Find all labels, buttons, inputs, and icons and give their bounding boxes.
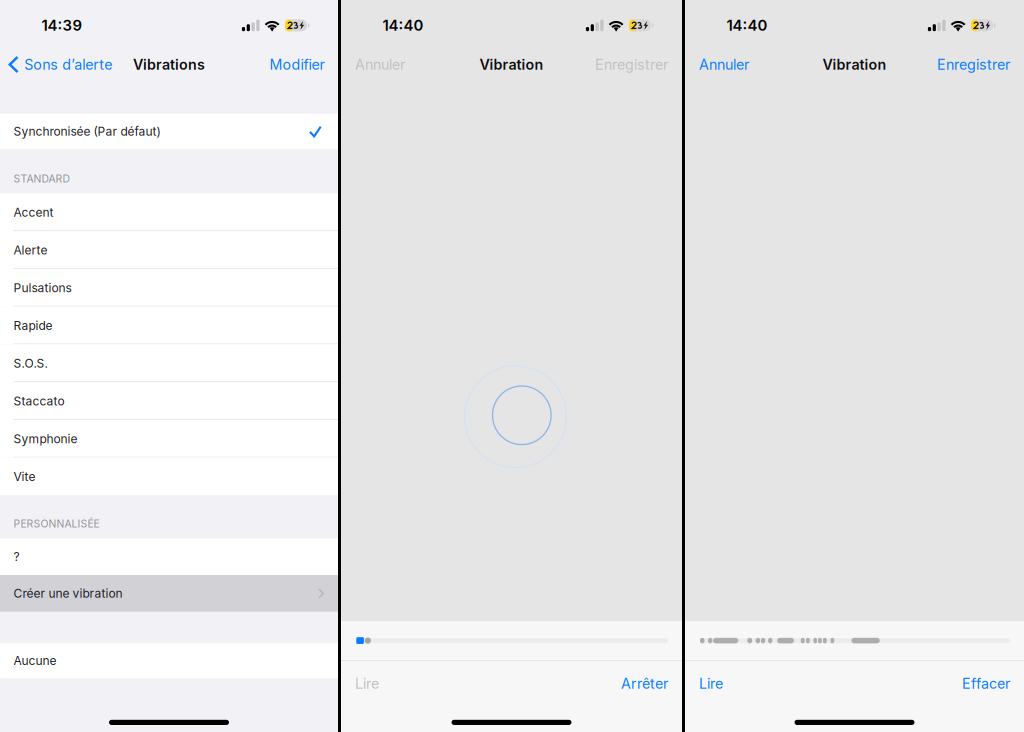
staticText: Vibration: [822, 56, 886, 73]
button[interactable]: S.O.S.: [0, 344, 338, 382]
staticText: Annuler: [355, 56, 405, 73]
staticText: Effacer: [962, 675, 1010, 692]
staticText: 14:40: [382, 16, 423, 34]
staticText: Modifier: [269, 56, 324, 73]
staticText: Alerte: [13, 243, 47, 257]
staticText: Vibration: [479, 56, 543, 73]
staticText: Lire: [699, 675, 723, 692]
staticText: Lire: [355, 675, 379, 692]
button[interactable]: Créer une vibration: [0, 575, 338, 612]
staticText: Annuler: [699, 56, 749, 73]
button[interactable]: Alerte: [0, 231, 338, 269]
button[interactable]: Accent: [0, 193, 338, 231]
staticText: Aucune: [13, 653, 56, 668]
staticText: Enregistrer: [937, 56, 1010, 73]
staticText: Symphonie: [13, 431, 77, 446]
staticText: PERSONNALISÉE: [13, 517, 99, 530]
staticText: Vite: [13, 469, 35, 484]
button[interactable]: Annuler: [341, 49, 405, 80]
button[interactable]: Modifier: [269, 49, 338, 80]
staticText: Enregistrer: [595, 56, 668, 73]
staticText: STANDARD: [13, 172, 70, 185]
button[interactable]: Synchronisée (Par défaut): [0, 114, 338, 149]
staticText: Pulsations: [13, 280, 71, 295]
staticText: 14:40: [726, 16, 767, 34]
staticText: Vibrations: [133, 56, 205, 73]
staticText: Staccato: [13, 394, 64, 408]
staticText: Sons d’alerte: [24, 56, 112, 73]
staticText: Créer une vibration: [13, 586, 122, 601]
staticText: Accent: [13, 205, 53, 219]
button[interactable]: Annuler: [685, 49, 749, 80]
button[interactable]: Lire: [685, 669, 723, 698]
button[interactable]: ?: [0, 538, 338, 575]
button[interactable]: Rapide: [0, 307, 338, 344]
staticText: S.O.S.: [13, 356, 47, 370]
staticText: Arrêter: [621, 675, 668, 692]
button[interactable]: Arrêter: [621, 669, 682, 698]
staticText: ?: [13, 549, 19, 564]
button[interactable]: Pulsations: [0, 269, 338, 307]
button[interactable]: Staccato: [0, 382, 338, 420]
button[interactable]: Effacer: [962, 669, 1024, 698]
button[interactable]: Aucune: [0, 643, 338, 678]
button[interactable]: Vite: [0, 458, 338, 495]
button[interactable]: Symphonie: [0, 420, 338, 458]
button[interactable]: Lire: [341, 669, 379, 698]
staticText: Rapide: [13, 318, 52, 333]
button[interactable]: Enregistrer: [595, 49, 682, 80]
staticText: 14:39: [41, 16, 82, 34]
button[interactable]: Enregistrer: [937, 49, 1024, 80]
button[interactable]: Sons d’alerte: [0, 49, 112, 80]
staticText: Synchronisée (Par défaut): [13, 124, 160, 139]
